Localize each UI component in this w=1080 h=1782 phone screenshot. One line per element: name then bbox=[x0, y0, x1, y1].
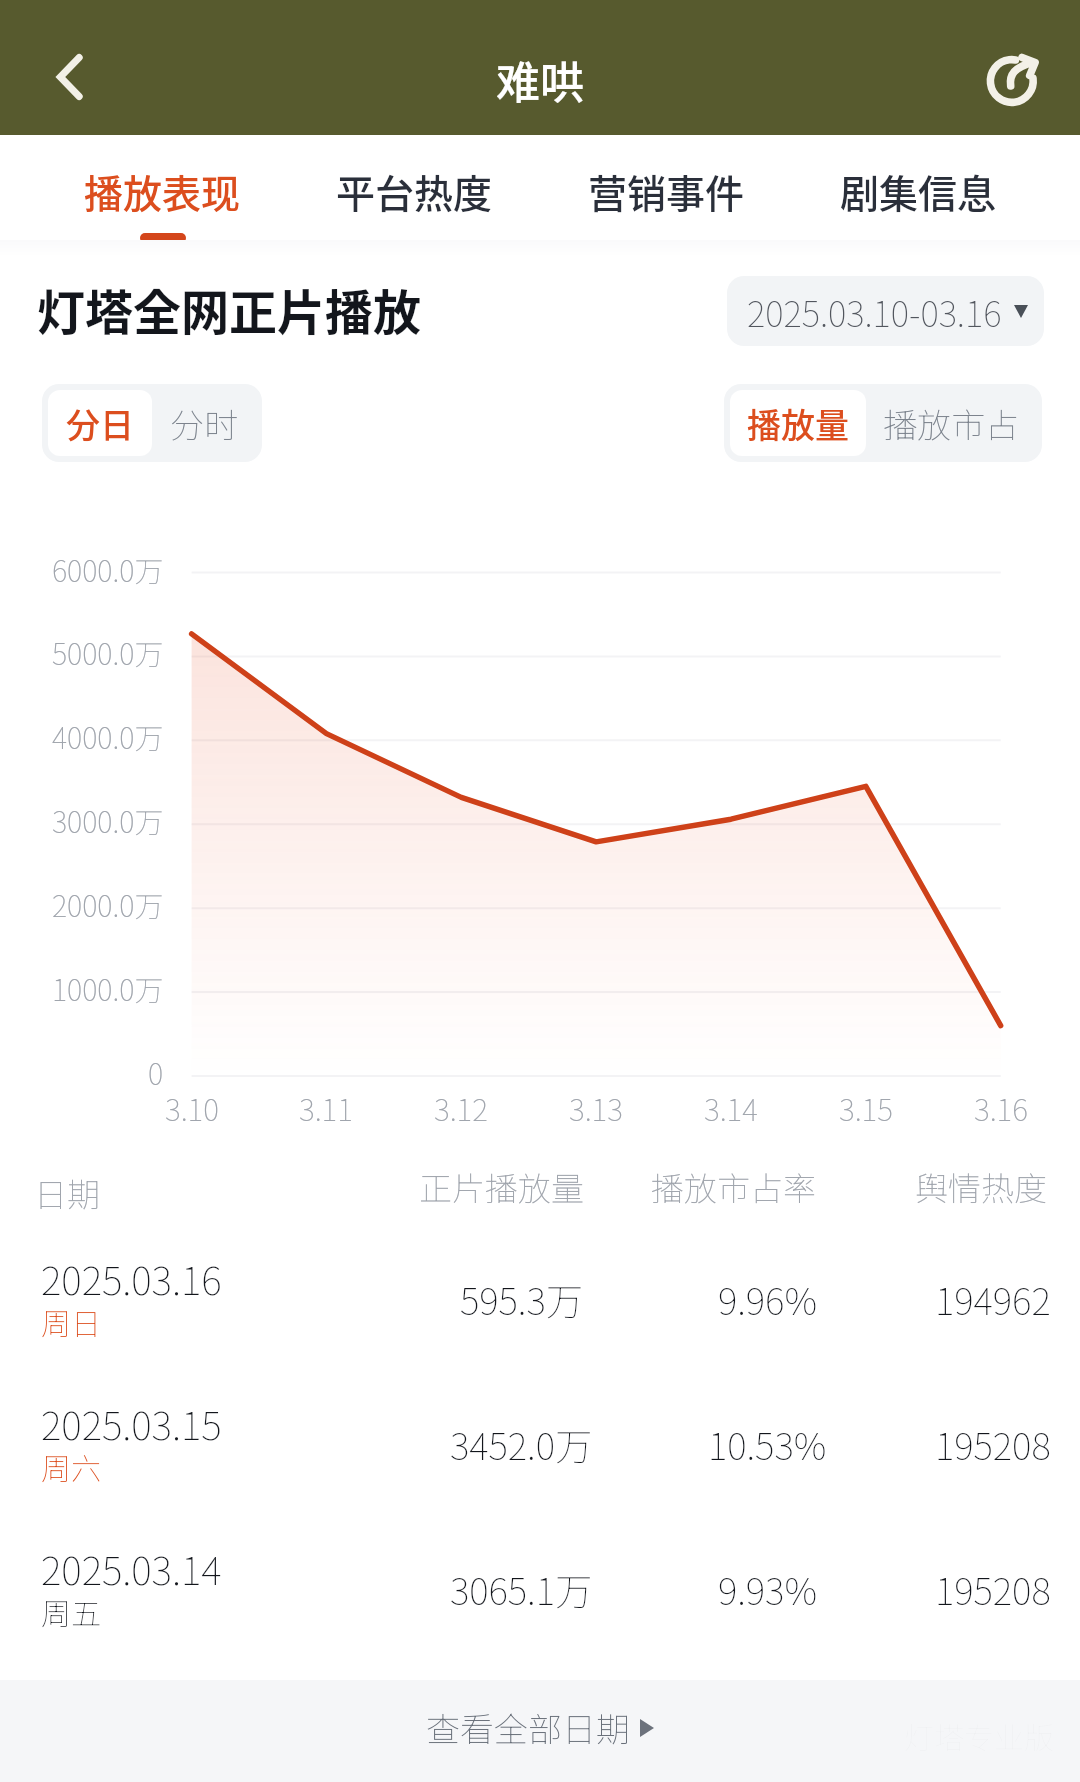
staticText: 周六 bbox=[41, 1445, 101, 1488]
staticText: 1000.0万 bbox=[52, 967, 164, 1009]
staticText: 正片播放量 bbox=[419, 1163, 584, 1211]
staticText: 日期 bbox=[34, 1169, 100, 1217]
staticText: 194962 bbox=[935, 1272, 1051, 1326]
staticText: 3.14 bbox=[704, 1086, 758, 1129]
button[interactable]: 2025.03.14 bbox=[0, 1530, 1080, 1675]
staticText: 3.11 bbox=[299, 1086, 353, 1129]
staticText: 3.15 bbox=[839, 1086, 893, 1129]
staticText: 2025.03.15 bbox=[41, 1395, 222, 1451]
staticText: 0 bbox=[148, 1051, 164, 1093]
button[interactable]: 灯塔专业版 bbox=[0, 1680, 1080, 1782]
staticText: 播放表现 bbox=[84, 163, 241, 219]
button[interactable]: 2025.03.15 bbox=[0, 1385, 1080, 1530]
staticText: 2025.03.14 bbox=[41, 1540, 222, 1596]
button[interactable]: 播放市占 bbox=[866, 390, 1036, 456]
staticText: 营销事件 bbox=[588, 163, 745, 219]
staticText: 6000.0万 bbox=[52, 548, 164, 590]
staticText: 2025.03.16 bbox=[41, 1250, 222, 1306]
button[interactable]: 剧集信息 bbox=[792, 135, 1044, 257]
staticText: 2000.0万 bbox=[52, 883, 164, 925]
staticText: 5000.0万 bbox=[52, 631, 164, 673]
button[interactable]: 2025.03.10-03.16 bbox=[727, 276, 1044, 346]
button[interactable]: 平台热度 bbox=[288, 135, 540, 257]
button[interactable]: 分日 bbox=[48, 390, 152, 456]
staticText: 3000.0万 bbox=[52, 799, 164, 841]
staticText: 2025.03.10-03.16 bbox=[747, 286, 1002, 337]
staticText: 3452.0万 bbox=[450, 1417, 592, 1471]
staticText: 4000.0万 bbox=[52, 715, 164, 757]
staticText: 3065.1万 bbox=[450, 1562, 592, 1616]
staticText: 剧集信息 bbox=[840, 163, 997, 219]
button[interactable]: Share bbox=[966, 33, 1062, 129]
staticText: 3.16 bbox=[974, 1086, 1028, 1129]
staticText: 195208 bbox=[935, 1562, 1051, 1616]
staticText: 分时 bbox=[170, 399, 238, 448]
staticText: 3.12 bbox=[434, 1086, 488, 1129]
staticText: 周日 bbox=[41, 1300, 101, 1343]
staticText: 播放量 bbox=[747, 399, 849, 448]
staticText: 10.53% bbox=[708, 1417, 827, 1471]
button[interactable]: 营销事件 bbox=[540, 135, 792, 257]
staticText: 播放市占率 bbox=[651, 1163, 816, 1211]
staticText: 舆情热度 bbox=[915, 1163, 1047, 1211]
button[interactable]: Back bbox=[21, 29, 117, 125]
button[interactable]: 分时 bbox=[152, 390, 256, 456]
staticText: 9.93% bbox=[718, 1562, 817, 1616]
staticText: 周五 bbox=[41, 1590, 101, 1633]
staticText: 灯塔全网正片播放 bbox=[37, 274, 422, 344]
staticText: 查看全部日期 bbox=[426, 1703, 630, 1752]
staticText: 播放市占 bbox=[883, 399, 1019, 448]
staticText: 9.96% bbox=[718, 1272, 817, 1326]
button[interactable]: 2025.03.16 bbox=[0, 1240, 1080, 1385]
button[interactable]: 播放量 bbox=[730, 390, 866, 456]
staticText: 595.3万 bbox=[460, 1272, 583, 1326]
button[interactable]: 播放表现 bbox=[37, 135, 288, 257]
staticText: 难哄 bbox=[496, 48, 584, 112]
staticText: 分日 bbox=[66, 399, 134, 448]
staticText: 平台热度 bbox=[336, 163, 493, 219]
staticText: 3.13 bbox=[569, 1086, 623, 1129]
staticText: 3.10 bbox=[165, 1086, 219, 1129]
staticText: 195208 bbox=[935, 1417, 1051, 1471]
